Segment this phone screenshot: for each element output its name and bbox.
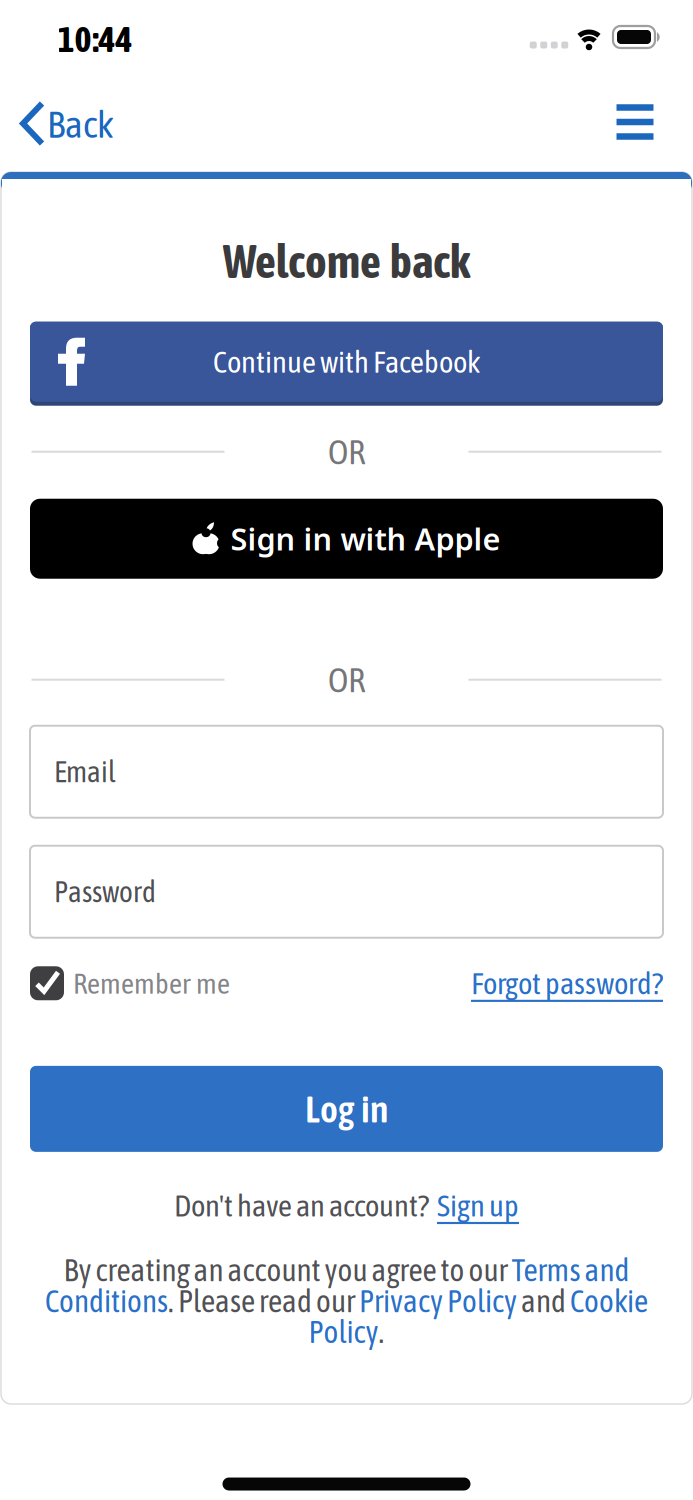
button[interactable]: Policy <box>308 1314 378 1350</box>
button[interactable]: Continue with Facebook <box>30 322 663 406</box>
staticText: Log in <box>305 1087 388 1131</box>
staticText: OR <box>328 432 365 472</box>
staticText: Email <box>54 755 116 788</box>
staticText: Cookie <box>570 1283 648 1319</box>
staticText: Privacy Policy <box>359 1283 517 1319</box>
staticText: Conditions <box>45 1283 168 1319</box>
staticText: Password <box>54 875 156 908</box>
button[interactable] <box>616 104 653 140</box>
staticText: OR <box>328 660 365 700</box>
staticText: By creating an account you agree to our <box>63 1252 511 1288</box>
staticText: Welcome back <box>223 235 470 288</box>
staticText: Continue with Facebook <box>213 344 480 379</box>
staticText: Policy <box>308 1314 378 1350</box>
staticText: Sign in with Apple <box>230 518 500 559</box>
staticText: Terms and <box>511 1252 629 1288</box>
button[interactable]: Cookie <box>570 1283 648 1319</box>
staticText: 10:44 <box>57 18 132 60</box>
button[interactable]: Terms and <box>511 1252 629 1288</box>
button[interactable]: Log in <box>30 1066 663 1152</box>
button[interactable]: Sign in with Apple <box>30 499 663 579</box>
staticText: Back <box>47 102 114 146</box>
button[interactable]: Back <box>22 102 114 146</box>
staticText: Forgot password? <box>471 966 663 1001</box>
button[interactable]: Remember me <box>30 966 230 1000</box>
staticText: and <box>517 1283 570 1319</box>
button[interactable]: Conditions <box>45 1283 168 1319</box>
staticText: . <box>378 1314 384 1350</box>
staticText: Sign up <box>437 1188 519 1223</box>
button[interactable]: Sign up <box>437 1188 519 1223</box>
staticText: Remember me <box>73 967 230 1000</box>
button[interactable]: Privacy Policy <box>359 1283 517 1319</box>
staticText: Don't have an account? <box>174 1188 429 1223</box>
staticText: . Please read our <box>168 1283 359 1319</box>
button[interactable]: Forgot password? <box>471 966 663 1001</box>
